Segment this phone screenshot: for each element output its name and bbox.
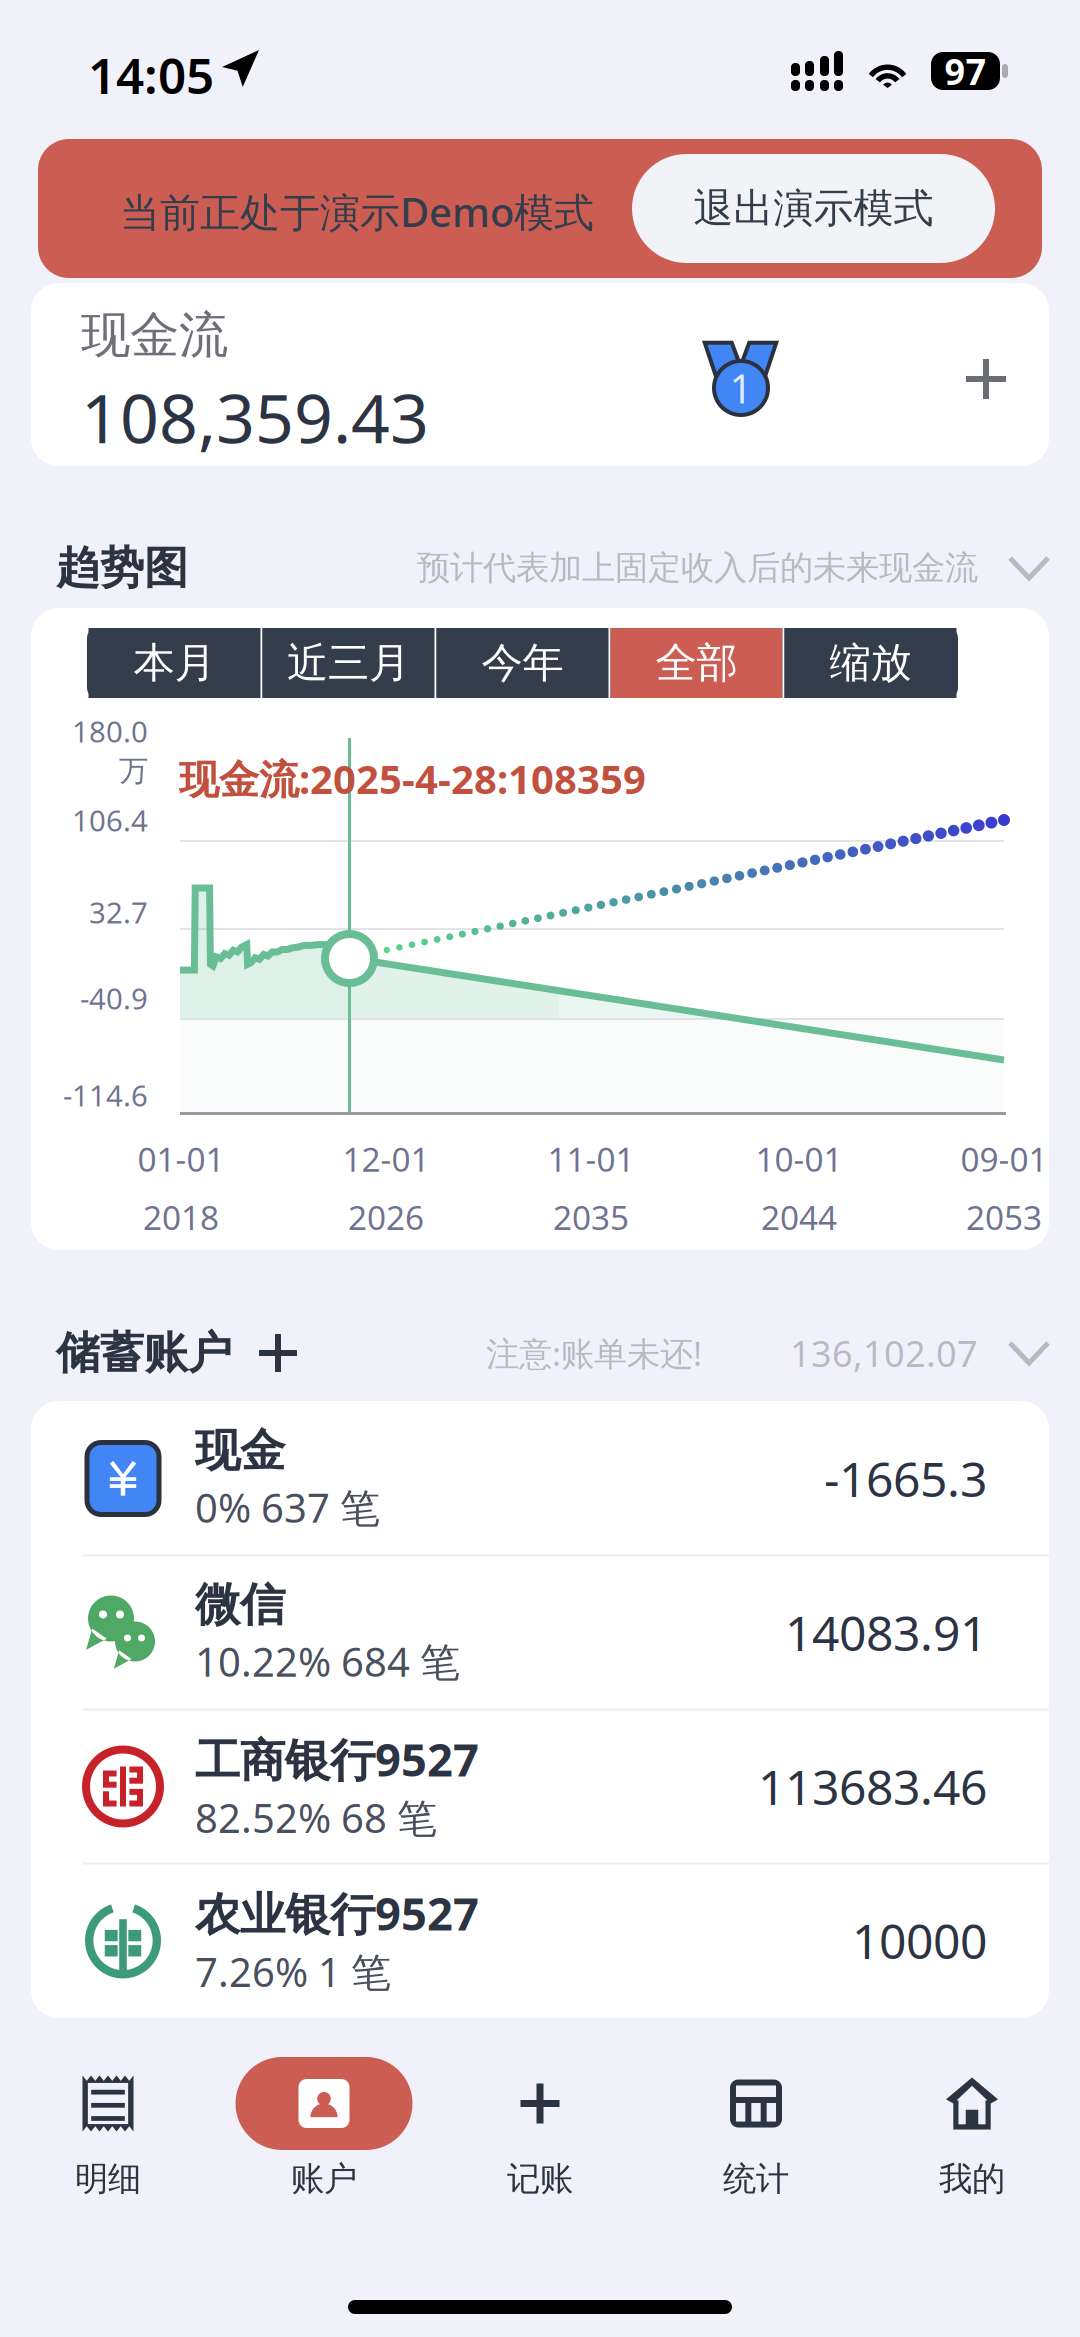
staticText: 退出演示模式 [693,184,933,233]
staticText: 农业银行9527 [195,1883,479,1943]
staticText: 微信 [195,1577,285,1633]
staticText: 113683.46 [758,1755,987,1818]
staticText: 现金 [195,1423,285,1479]
staticText: 本月 [133,638,215,688]
button[interactable]: 工商银行9527 [31,1710,1049,1862]
button[interactable]: 今年 [436,628,608,698]
button[interactable]: 全部 [610,628,782,698]
staticText: 趋势图 [56,541,188,595]
staticText: 32.7 [89,892,148,931]
button[interactable]: 退出演示模式 [632,154,995,263]
staticText: 01-01 [137,1137,224,1181]
staticText: 1 [729,361,752,414]
button[interactable]: 统计 [648,2040,864,2200]
staticText: 14:05 [88,42,214,107]
staticText: 106.4 [72,800,148,839]
staticText: 2035 [553,1195,629,1239]
staticText: 11-01 [547,1137,634,1181]
staticText: 工商银行9527 [195,1729,479,1789]
button[interactable]: Add [941,334,1031,424]
staticText: 账户 [291,2158,357,2199]
staticText: 我的 [939,2158,1005,2199]
button[interactable]: 我的 [864,2040,1080,2200]
staticText: 7.26% 1 笔 [195,1945,391,1998]
button[interactable]: Add account [232,1322,324,1384]
staticText: 2018 [143,1195,219,1239]
button[interactable]: 近三月 [262,628,434,698]
staticText: 10-01 [755,1137,842,1181]
staticText: -40.9 [80,978,148,1017]
button[interactable]: 缩放 [784,628,956,698]
staticText: 全部 [655,638,737,688]
staticText: 近三月 [287,638,410,688]
button[interactable]: Collapse [978,537,1080,599]
staticText: 82.52% 68 笔 [195,1791,437,1844]
staticText: 统计 [723,2158,789,2199]
staticText: 12-01 [342,1137,429,1181]
button[interactable]: Collapse [978,1322,1080,1384]
staticText: 记账 [507,2158,573,2199]
staticText: 2053 [966,1195,1042,1239]
button[interactable]: 农业银行9527 [31,1864,1049,2016]
staticText: 今年 [481,638,563,688]
staticText: 现金流:2025-4-28:108359 [179,752,646,805]
staticText: 136,102.07 [790,1329,978,1377]
staticText: 2026 [348,1195,424,1239]
button[interactable]: 账户 [216,2040,432,2200]
staticText: 注意:账单未还! [486,1331,702,1375]
button[interactable]: 本月 [88,628,260,698]
staticText: -114.6 [63,1075,148,1114]
staticText: -1665.3 [824,1447,987,1510]
button[interactable]: 微信 [31,1556,1049,1708]
staticText: 108,359.43 [81,372,429,462]
staticText: 10000 [852,1909,987,1972]
staticText: 180.0 [72,711,148,750]
staticText: 万 [119,753,148,789]
staticText: 09-01 [960,1137,1047,1181]
staticText: 14083.91 [785,1601,987,1664]
staticText: 2044 [761,1195,837,1239]
staticText: 当前正处于演示Demo模式 [120,185,594,238]
staticText: 0% 637 笔 [195,1481,380,1534]
staticText: 现金流 [81,305,228,366]
staticText: 明细 [75,2158,141,2199]
staticText: 10.22% 684 笔 [195,1635,460,1688]
button[interactable]: 现金 [31,1402,1049,1554]
staticText: 储蓄账户 [56,1326,232,1380]
staticText: 预计代表加上固定收入后的未来现金流 [417,547,978,588]
staticText: 97 [944,47,986,95]
button[interactable]: 明细 [0,2040,216,2200]
button[interactable]: 记账 [432,2040,648,2200]
staticText: 缩放 [829,638,911,688]
